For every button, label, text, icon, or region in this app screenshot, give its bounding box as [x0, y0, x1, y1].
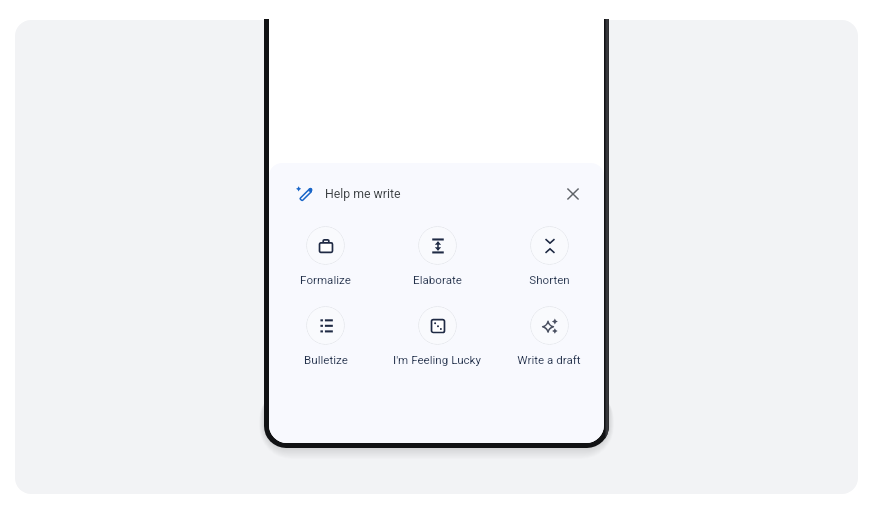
button[interactable]: Close	[559, 180, 587, 208]
staticText: Write a draft	[517, 353, 581, 367]
staticText: Formalize	[300, 273, 351, 287]
button[interactable]: Write a draft	[493, 306, 604, 375]
staticText: Elaborate	[413, 273, 462, 287]
button[interactable]: Shorten	[493, 226, 604, 295]
button[interactable]: Bulletize	[270, 306, 381, 375]
staticText: Help me write	[325, 187, 401, 201]
button[interactable]: Elaborate	[381, 226, 493, 295]
staticText: Shorten	[529, 273, 570, 287]
button[interactable]: I'm Feeling Lucky	[381, 306, 493, 375]
staticText: Bulletize	[304, 353, 348, 367]
staticText: I'm Feeling Lucky	[393, 353, 481, 367]
button[interactable]: Formalize	[270, 226, 381, 295]
